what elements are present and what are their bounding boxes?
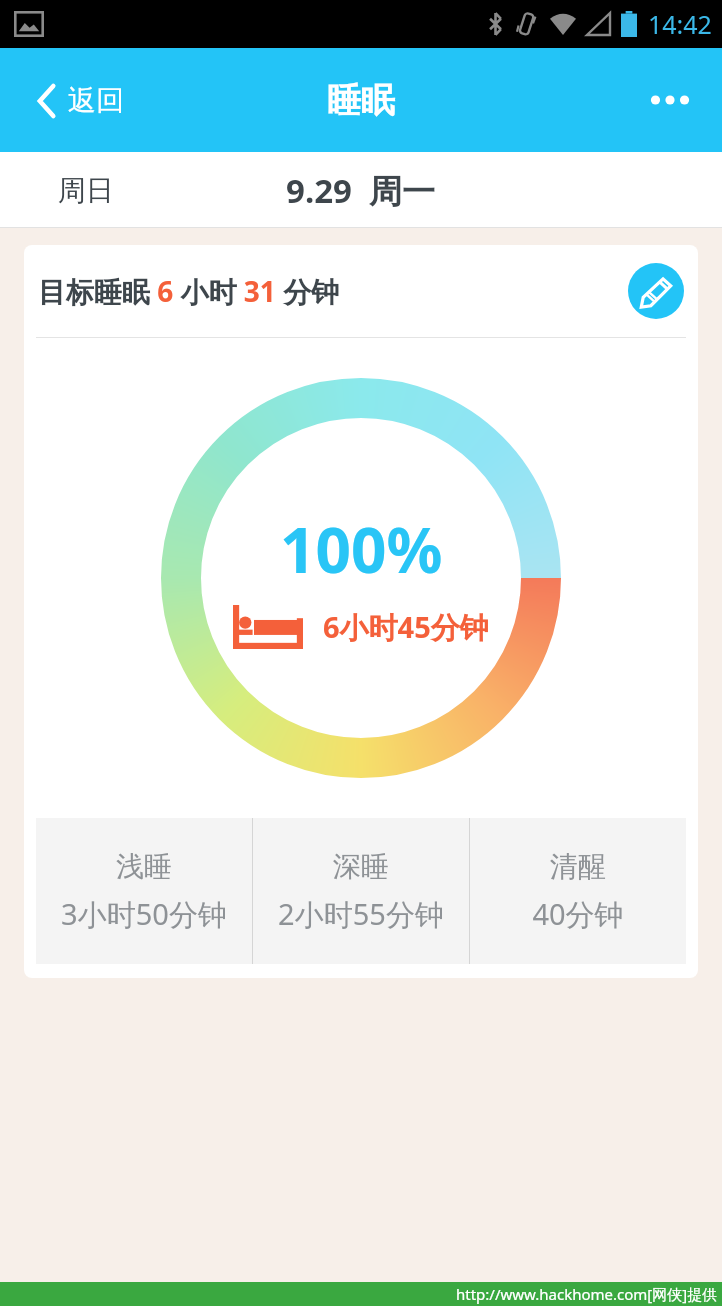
button[interactable]: 深睡 xyxy=(253,818,469,964)
staticText: 清醒 xyxy=(550,849,606,884)
button[interactable]: 9.29 周一 xyxy=(286,168,436,213)
staticText: 深睡 xyxy=(333,849,389,884)
button[interactable]: 浅睡 xyxy=(36,818,252,964)
staticText: 14:42 xyxy=(648,7,712,41)
staticText: 浅睡 xyxy=(116,849,172,884)
staticText: 睡眠 xyxy=(327,79,395,122)
button[interactable]: 周日 xyxy=(58,173,114,208)
button[interactable]: 清醒 xyxy=(470,818,686,964)
staticText: 3小时50分钟 xyxy=(61,894,227,934)
staticText: http://www.hackhome.com[网侠]提供 xyxy=(456,1284,718,1304)
staticText: 6小时45分钟 xyxy=(323,607,489,647)
button[interactable]: 返回 xyxy=(30,75,132,126)
button[interactable]: More options xyxy=(642,72,698,128)
staticText: 40分钟 xyxy=(532,894,624,934)
staticText: 目标睡眠 6 小时 31 分钟 xyxy=(38,272,340,310)
staticText: 100% xyxy=(280,507,443,591)
staticText: 返回 xyxy=(68,83,124,118)
staticText: 2小时55分钟 xyxy=(278,894,444,934)
button[interactable]: Edit sleep goal xyxy=(628,263,684,319)
